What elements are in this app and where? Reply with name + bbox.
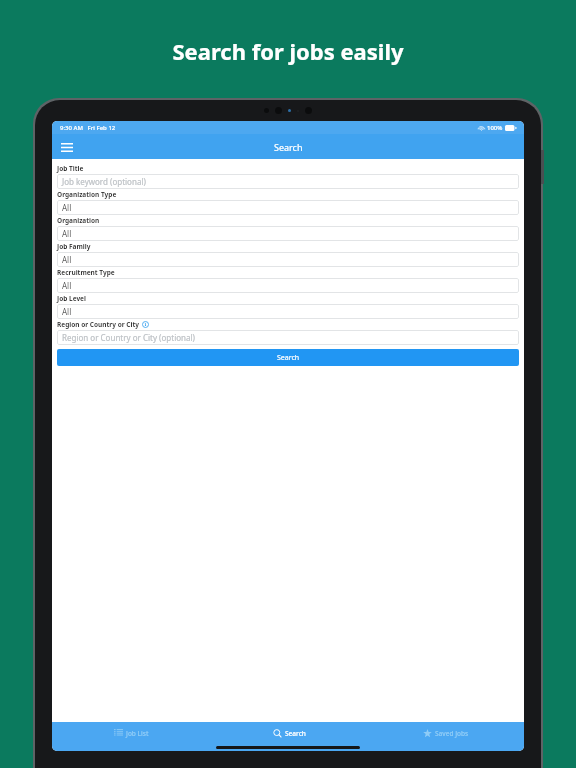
staticText: Search [274, 141, 303, 153]
staticText: 100% [487, 124, 503, 132]
staticText: Search for jobs easily [0, 36, 576, 66]
staticText: Job List [126, 729, 149, 738]
staticText: Region or Country or City (optional) [62, 332, 195, 343]
staticText: Recruitment Type [57, 268, 115, 277]
button[interactable]: Job keyword (optional) [57, 174, 519, 189]
button[interactable]: All [57, 252, 519, 267]
button[interactable]: Search [210, 722, 367, 744]
button[interactable]: Region or Country or City (optional) [57, 330, 519, 345]
button[interactable]: All [57, 304, 519, 319]
button[interactable]: All [57, 278, 519, 293]
staticText: Search [277, 353, 300, 363]
button[interactable]: Saved Jobs [367, 722, 524, 744]
button[interactable]: All [57, 200, 519, 215]
staticText: Organization Type [57, 190, 117, 199]
staticText: All [62, 254, 72, 265]
staticText: Job keyword (optional) [62, 176, 146, 187]
staticText: All [62, 202, 72, 213]
staticText: Search [285, 729, 306, 738]
button[interactable]: Job List [52, 722, 210, 744]
button[interactable]: Region information [142, 321, 149, 328]
staticText: Organization [57, 216, 100, 225]
button[interactable]: All [57, 226, 519, 241]
staticText: Saved Jobs [435, 729, 469, 738]
staticText: All [62, 280, 72, 291]
staticText: All [62, 228, 72, 239]
staticText: 9:30 AM Fri Feb 12 [60, 124, 116, 132]
staticText: Job Title [57, 164, 84, 173]
staticText: Job Family [57, 242, 91, 251]
button[interactable]: Search [57, 349, 519, 366]
staticText: All [62, 306, 72, 317]
staticText: Region or Country or City [57, 320, 139, 329]
button[interactable]: Open navigation menu [57, 137, 77, 157]
staticText: Job Level [57, 294, 86, 303]
